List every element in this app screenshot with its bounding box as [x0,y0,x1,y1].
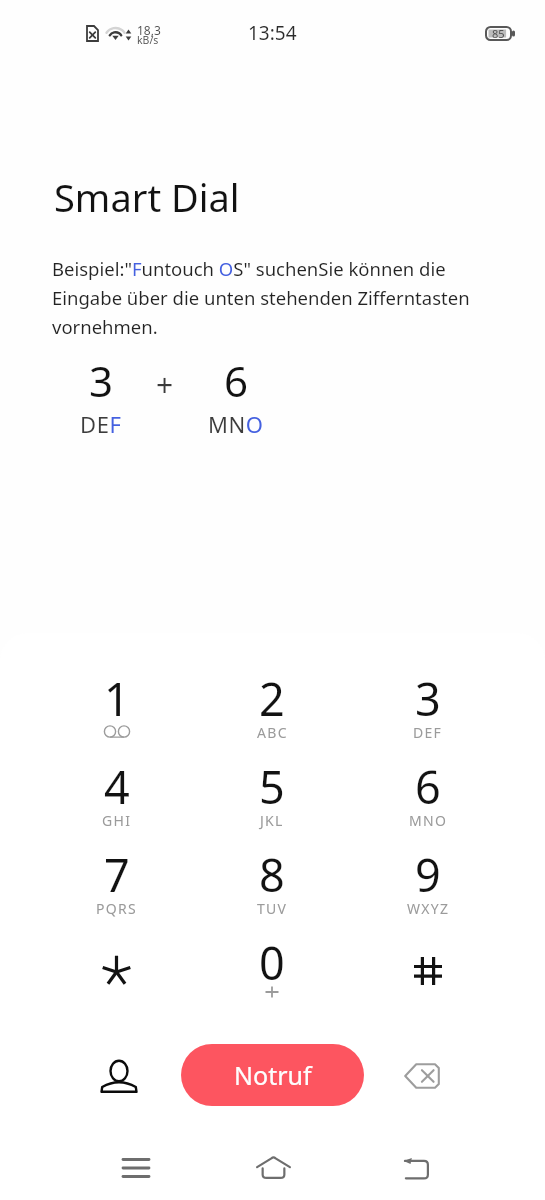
button[interactable] [350,918,506,1006]
staticText: 2 [259,668,285,729]
staticText: JKL [260,811,284,830]
button[interactable]: 9 [350,830,506,918]
button[interactable]: 1 [39,654,194,742]
button[interactable]: 2 [194,654,350,742]
staticText: kB/s [137,33,159,47]
button[interactable]: 0 [194,918,350,1006]
staticText: 4 [104,756,130,817]
staticText: DEF [80,409,122,439]
button[interactable]: Löschen [387,1041,457,1111]
button[interactable]: 4 [39,742,194,830]
button[interactable]: Notruf [181,1044,364,1106]
staticText: 7 [104,844,130,905]
button[interactable]: 7 [39,830,194,918]
staticText: ABC [257,723,288,742]
staticText: 9 [415,844,441,905]
staticText: Beispiel:"Funtouch OS" suchenSie können … [52,256,498,339]
staticText: 6 [224,352,249,409]
button[interactable]: Kontakte [84,1041,154,1111]
staticText: 5 [259,756,285,817]
button[interactable]: Menü [101,1140,171,1196]
staticText: TUV [257,899,288,918]
staticText: Notruf [234,1058,312,1092]
staticText: GHI [102,811,132,830]
button[interactable]: 8 [194,830,350,918]
button[interactable] [39,918,194,1006]
button[interactable]: 3 [350,654,506,742]
staticText: 3 [89,352,114,409]
staticText: Smart Dial [54,171,240,223]
staticText: PQRS [96,899,137,918]
button[interactable]: Startseite [238,1140,308,1196]
staticText: 85 [492,26,505,41]
staticText: 3 [415,668,441,729]
staticText: 6 [415,756,441,817]
staticText: MNO [409,811,448,830]
staticText: 1 [104,668,130,729]
staticText: + [156,364,174,405]
button[interactable]: 5 [194,742,350,830]
staticText: DEF [413,723,443,742]
button[interactable]: Zurück [381,1140,451,1196]
staticText: 18,3 [137,22,161,38]
staticText: WXYZ [407,899,450,918]
staticText: MNO [208,409,264,439]
staticText: 13:54 [248,20,297,46]
staticText: 0 [259,932,285,993]
button[interactable]: 6 [350,742,506,830]
staticText: 8 [259,844,285,905]
